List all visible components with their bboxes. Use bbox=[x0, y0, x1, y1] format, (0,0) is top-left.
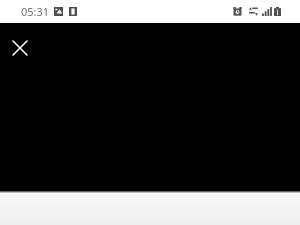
staticText: 05:31 bbox=[21, 4, 50, 19]
button[interactable]: Close bbox=[7, 35, 33, 61]
